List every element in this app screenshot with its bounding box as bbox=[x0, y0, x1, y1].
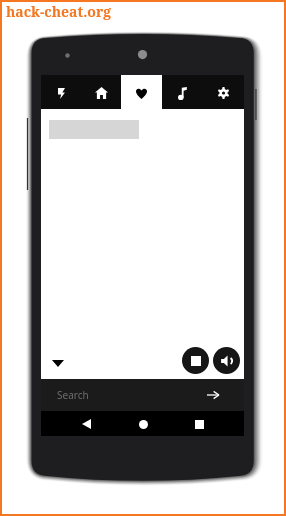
button[interactable]: Home bbox=[81, 75, 121, 109]
button[interactable]: Recents bbox=[188, 413, 210, 435]
button[interactable]: Expand bbox=[46, 349, 70, 373]
button[interactable]: Back bbox=[75, 413, 97, 435]
button[interactable]: Flash bbox=[41, 75, 81, 109]
staticText: Search bbox=[57, 388, 89, 402]
button[interactable]: Music bbox=[162, 75, 203, 109]
button[interactable]: Volume bbox=[213, 347, 240, 374]
button[interactable]: Stop bbox=[182, 347, 209, 374]
button[interactable]: Home bbox=[132, 413, 154, 435]
button[interactable]: Search bbox=[41, 379, 244, 411]
button[interactable]: Favorites bbox=[121, 75, 162, 109]
button[interactable]: Settings bbox=[203, 75, 244, 109]
staticText: hack-cheat.org bbox=[6, 2, 112, 21]
